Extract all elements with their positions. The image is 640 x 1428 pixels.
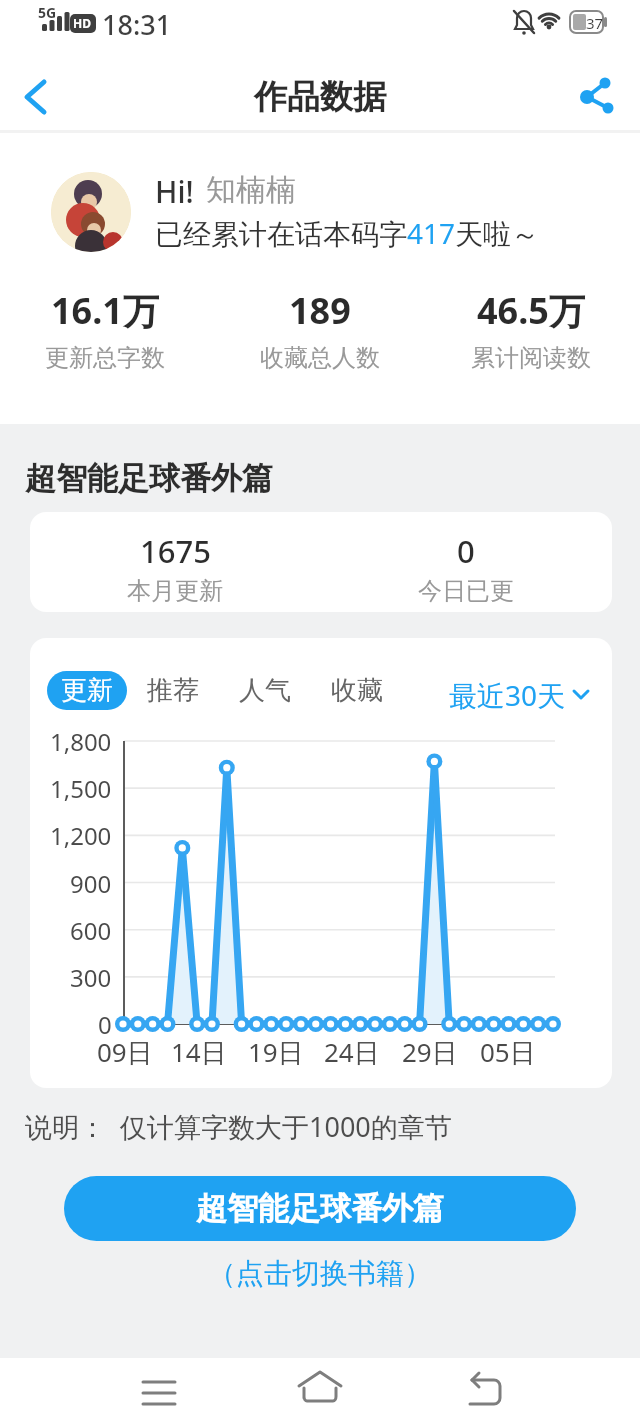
- staticText: 推荐: [147, 674, 199, 707]
- staticText: 作品数据: [254, 76, 386, 118]
- staticText: 19日: [248, 1034, 304, 1070]
- staticText: 46.5万: [477, 286, 585, 335]
- button[interactable]: [295, 1368, 345, 1418]
- staticText: 累计阅读数: [471, 343, 591, 373]
- staticText: 0: [98, 1008, 112, 1040]
- staticText: 最近30天: [449, 676, 566, 714]
- staticText: 5G: [38, 3, 57, 22]
- staticText: 1,200: [50, 819, 112, 851]
- button[interactable]: [135, 1368, 185, 1418]
- staticText: 更新总字数: [45, 343, 165, 373]
- staticText: 05日: [480, 1034, 536, 1070]
- staticText: 1675: [140, 530, 211, 572]
- staticText: 知楠楠: [206, 171, 296, 209]
- staticText: 600: [70, 914, 112, 946]
- staticText: 29日: [402, 1034, 458, 1070]
- button[interactable]: 推荐: [133, 671, 213, 710]
- staticText: 24日: [324, 1034, 380, 1070]
- staticText: Hi!: [155, 171, 194, 212]
- staticText: 09日: [97, 1034, 153, 1070]
- button[interactable]: 收藏: [317, 671, 397, 710]
- staticText: 900: [70, 867, 112, 899]
- staticText: 37: [586, 13, 604, 33]
- staticText: 1,800: [50, 725, 112, 757]
- staticText: 16.1万: [51, 286, 159, 335]
- staticText: 说明： 仅计算字数大于1000的章节: [25, 1108, 452, 1145]
- button[interactable]: [572, 72, 622, 122]
- staticText: 189: [289, 286, 351, 335]
- staticText: 14日: [171, 1034, 227, 1070]
- staticText: 1,500: [50, 772, 112, 804]
- staticText: 今日已更: [418, 576, 514, 606]
- staticText: HD: [73, 15, 91, 31]
- staticText: 人气: [239, 674, 291, 707]
- button[interactable]: 超智能足球番外篇: [64, 1176, 576, 1241]
- staticText: 超智能足球番外篇: [25, 459, 273, 498]
- button[interactable]: （点击切换书籍）: [208, 1256, 432, 1291]
- staticText: 已经累计在话本码字417天啦～: [155, 214, 540, 252]
- button[interactable]: [460, 1368, 510, 1418]
- staticText: 更新: [61, 674, 113, 707]
- staticText: 收藏: [331, 674, 383, 707]
- button[interactable]: 更新: [47, 671, 127, 710]
- button[interactable]: 人气: [225, 671, 305, 710]
- staticText: 收藏总人数: [260, 343, 380, 373]
- staticText: 0: [457, 530, 475, 572]
- staticText: 超智能足球番外篇: [196, 1189, 444, 1228]
- staticText: 300: [70, 961, 112, 993]
- staticText: 本月更新: [127, 576, 223, 606]
- button[interactable]: 最近30天: [449, 676, 590, 714]
- staticText: 18:31: [102, 6, 172, 43]
- button[interactable]: [10, 72, 60, 122]
